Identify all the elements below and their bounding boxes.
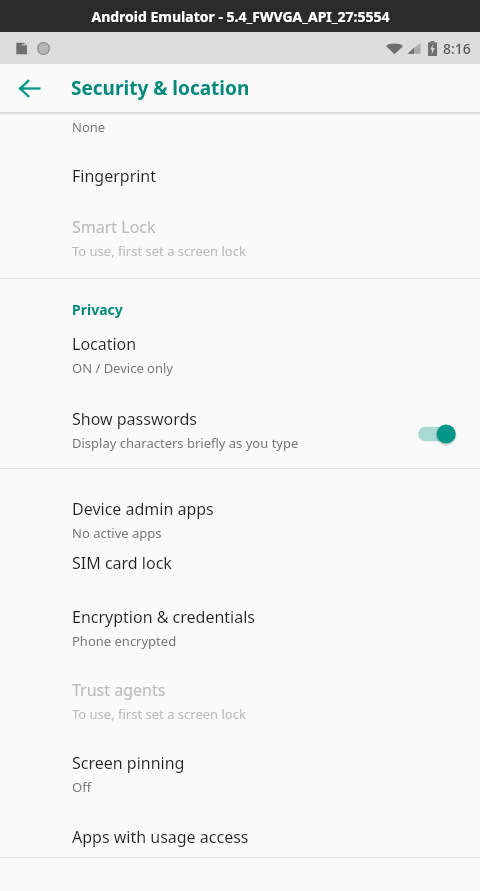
button[interactable]: Trust agents <box>0 669 480 742</box>
staticText: To use, first set a screen lock <box>72 705 246 723</box>
staticText: Screen pinning <box>72 752 185 774</box>
staticText: SIM card lock <box>72 552 172 574</box>
staticText: Show passwords <box>72 408 197 430</box>
staticText: Trust agents <box>72 679 166 701</box>
button[interactable]: Show passwords <box>0 396 480 468</box>
staticText: Display characters briefly as you type <box>72 434 299 452</box>
button[interactable]: Navigate up <box>7 66 51 110</box>
staticText: To use, first set a screen lock <box>72 242 246 260</box>
button[interactable]: SIM card lock <box>0 542 480 596</box>
staticText: Phone encrypted <box>72 632 177 650</box>
staticText: 8:16 <box>443 39 471 58</box>
button[interactable]: Screen pinning <box>0 742 480 815</box>
button[interactable]: Location <box>0 323 480 396</box>
staticText: No active apps <box>72 524 162 542</box>
button[interactable]: Fingerprint <box>0 149 480 202</box>
staticText: None <box>72 118 106 136</box>
staticText: Off <box>72 778 92 796</box>
button[interactable]: Device admin apps <box>0 469 480 542</box>
staticText: Encryption & credentials <box>72 606 255 628</box>
staticText: Privacy <box>72 300 123 319</box>
button[interactable]: Smart Lock <box>0 202 480 278</box>
button[interactable]: Show passwords <box>412 414 466 454</box>
staticText: Device admin apps <box>72 498 214 520</box>
staticText: Apps with usage access <box>72 826 249 848</box>
staticText: Location <box>72 333 137 355</box>
button[interactable]: None <box>0 116 480 149</box>
staticText: ON / Device only <box>72 359 173 377</box>
staticText: Security & location <box>71 75 250 101</box>
button[interactable]: Encryption & credentials <box>0 596 480 669</box>
button[interactable]: Apps with usage access <box>0 815 480 857</box>
staticText: Smart Lock <box>72 216 156 238</box>
staticText: Fingerprint <box>72 165 157 187</box>
staticText: Android Emulator - 5.4_FWVGA_API_27:5554 <box>91 7 390 26</box>
